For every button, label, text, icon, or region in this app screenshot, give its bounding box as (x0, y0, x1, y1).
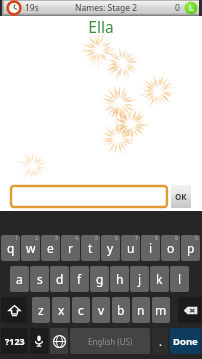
button[interactable]: w (21, 235, 40, 261)
staticText: v (98, 302, 105, 318)
staticText: ?123 (5, 335, 25, 347)
button[interactable]: Voice input (30, 328, 48, 354)
staticText: s (37, 271, 43, 287)
button[interactable]: f (70, 266, 89, 292)
staticText: w (26, 240, 36, 256)
button[interactable]: OK (171, 185, 191, 208)
button[interactable]: h (110, 266, 129, 292)
staticText: n (137, 302, 145, 318)
button[interactable]: e (41, 235, 60, 261)
staticText: 1 (15, 235, 18, 242)
staticText: i (149, 240, 153, 256)
staticText: h (116, 271, 124, 287)
staticText: 2 (35, 235, 38, 242)
staticText: r (68, 240, 73, 256)
button[interactable]: t (81, 235, 100, 261)
staticText: 0 (195, 235, 198, 242)
staticText: l (178, 271, 182, 287)
staticText: j (138, 271, 142, 287)
staticText: m (155, 302, 167, 318)
button[interactable]: k (150, 266, 169, 292)
button[interactable]: c (72, 297, 90, 323)
button[interactable]: b (112, 297, 130, 323)
button[interactable]: q (1, 235, 20, 261)
staticText: q (7, 240, 15, 256)
button[interactable]: Change language (50, 328, 68, 354)
staticText: c (78, 302, 84, 318)
button[interactable]: d (50, 266, 69, 292)
button[interactable]: i (141, 235, 160, 261)
staticText: f (77, 271, 82, 287)
button[interactable]: y (101, 235, 120, 261)
staticText: e (47, 240, 54, 256)
button[interactable]: . (152, 328, 168, 354)
staticText: x (58, 302, 65, 318)
button[interactable]: Backspace (178, 297, 202, 323)
staticText: u (127, 240, 135, 256)
staticText: Names: Stage 2 (75, 2, 138, 14)
staticText: 6 (115, 235, 118, 242)
button[interactable]: v (92, 297, 110, 323)
staticText: 5 (95, 235, 98, 242)
button[interactable]: Done (170, 328, 201, 354)
staticText: . (159, 334, 162, 349)
staticText: 3 (55, 235, 58, 242)
staticText: 0 (175, 2, 180, 14)
staticText: 8 (155, 235, 158, 242)
staticText: L (189, 2, 194, 14)
staticText: a (16, 271, 23, 287)
button[interactable]: z (32, 297, 50, 323)
button[interactable]: Shift (1, 297, 27, 323)
button[interactable]: n (132, 297, 150, 323)
staticText: 9 (175, 235, 178, 242)
staticText: o (167, 240, 175, 256)
button[interactable]: a (10, 266, 29, 292)
staticText: 19s (25, 2, 39, 14)
staticText: 7 (135, 235, 138, 242)
staticText: z (38, 302, 44, 318)
button[interactable]: r (61, 235, 80, 261)
button[interactable]: o (161, 235, 180, 261)
button[interactable]: s (30, 266, 49, 292)
button[interactable]: l (170, 266, 189, 292)
staticText: English (US) (88, 336, 133, 347)
staticText: t (88, 240, 93, 256)
button[interactable]: u (121, 235, 140, 261)
staticText: d (56, 271, 64, 287)
staticText: p (187, 240, 195, 256)
staticText: k (156, 271, 163, 287)
staticText: 4 (75, 235, 78, 242)
button[interactable]: English (US) (70, 328, 150, 354)
button[interactable] (11, 186, 167, 207)
staticText: Ella (0, 16, 202, 37)
staticText: b (117, 302, 125, 318)
button[interactable]: j (130, 266, 149, 292)
button[interactable]: g (90, 266, 109, 292)
button[interactable]: ?123 (1, 328, 28, 354)
button[interactable]: p (181, 235, 200, 261)
staticText: Done (173, 335, 198, 348)
staticText: g (96, 271, 104, 287)
button[interactable]: m (152, 297, 170, 323)
staticText: y (107, 240, 114, 256)
button[interactable]: x (52, 297, 70, 323)
staticText: OK (175, 191, 187, 202)
